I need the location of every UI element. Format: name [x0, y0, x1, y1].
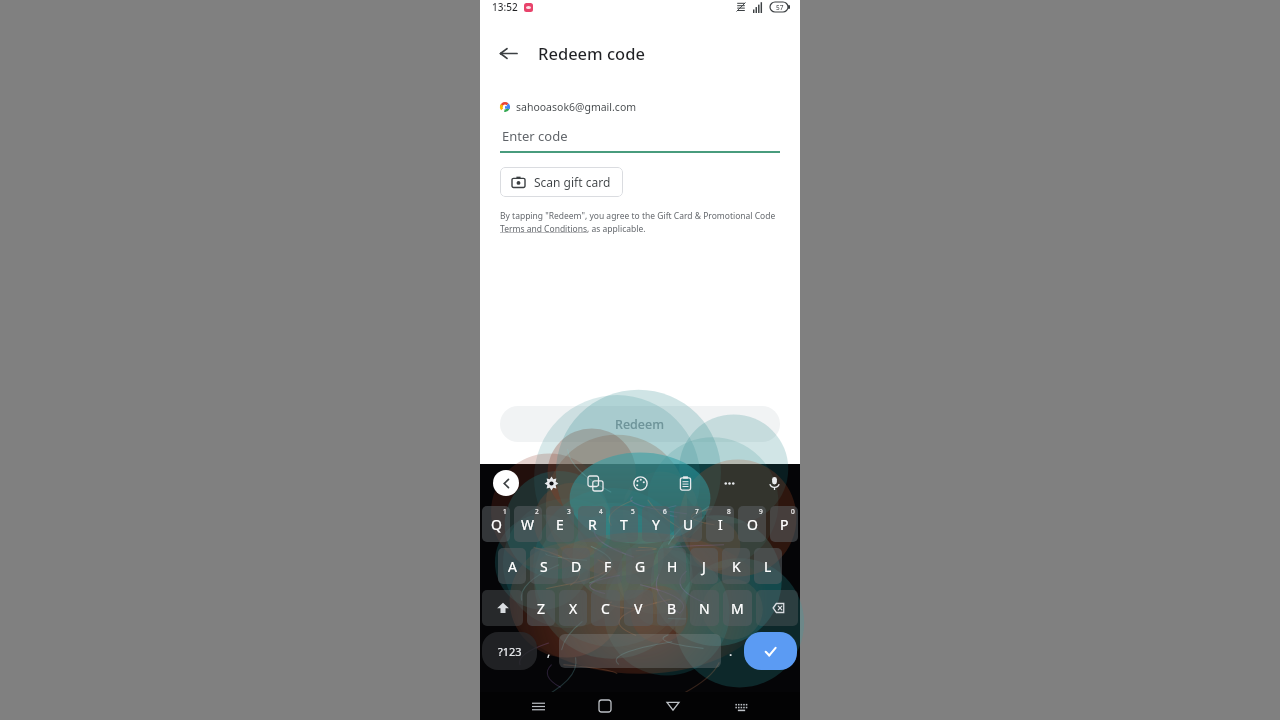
staticText: 57 — [776, 3, 784, 12]
staticText: X — [569, 599, 578, 618]
staticText: 4 — [599, 507, 603, 516]
button[interactable]: Comma — [539, 632, 559, 670]
staticText: M — [731, 599, 744, 618]
button[interactable]: Back — [493, 470, 519, 496]
button[interactable]: G — [626, 548, 654, 584]
button[interactable]: Enter — [744, 632, 797, 670]
staticText: N — [699, 599, 710, 618]
staticText: 8 — [727, 507, 731, 516]
staticText: I — [718, 515, 723, 534]
button[interactable]: H — [658, 548, 686, 584]
button[interactable]: Back — [660, 693, 686, 719]
button[interactable]: Translate — [582, 470, 608, 496]
staticText: W — [521, 515, 535, 534]
staticText: C — [601, 599, 610, 618]
staticText: 13:52 — [492, 0, 518, 14]
button[interactable]: ?123 — [482, 632, 537, 670]
staticText: 1 — [503, 507, 507, 516]
staticText: S — [540, 557, 548, 576]
staticText: , — [547, 643, 551, 659]
button[interactable]: Voice input — [761, 470, 787, 496]
button[interactable]: I — [706, 506, 734, 542]
staticText: Q — [491, 515, 502, 534]
button[interactable]: K — [722, 548, 750, 584]
button[interactable]: E — [546, 506, 574, 542]
button[interactable]: Y — [642, 506, 670, 542]
staticText: . — [729, 643, 733, 659]
staticText: G — [635, 557, 646, 576]
staticText: L — [764, 557, 772, 576]
button[interactable]: Q — [482, 506, 510, 542]
staticText: Scan gift card — [534, 174, 611, 190]
staticText: T — [620, 515, 628, 534]
staticText: K — [732, 557, 741, 576]
button[interactable]: B — [657, 590, 686, 626]
staticText: O — [747, 515, 758, 534]
button[interactable]: Z — [527, 590, 555, 626]
button[interactable]: More — [716, 470, 742, 496]
button[interactable]: Redeem — [500, 406, 780, 442]
button[interactable]: L — [754, 548, 782, 584]
button[interactable]: Switch keyboard — [728, 693, 754, 719]
staticText: H — [667, 557, 678, 576]
button[interactable]: Shift — [482, 590, 523, 626]
button[interactable]: Back — [488, 33, 528, 73]
button[interactable]: N — [690, 590, 719, 626]
button[interactable]: Period — [721, 632, 741, 670]
staticText: V — [634, 599, 643, 618]
staticText: R — [588, 515, 597, 534]
staticText: ?123 — [498, 644, 522, 659]
staticText: P — [780, 515, 789, 534]
staticText: E — [556, 515, 564, 534]
staticText: F — [604, 557, 612, 576]
button[interactable]: C — [591, 590, 620, 626]
staticText: By tapping "Redeem", you agree to the Gi… — [500, 210, 780, 234]
button[interactable]: Space — [559, 634, 721, 668]
staticText: 6 — [663, 507, 667, 516]
button[interactable]: Recent apps — [525, 693, 551, 719]
staticText: U — [683, 515, 694, 534]
staticText: 7 — [695, 507, 699, 516]
staticText: Enter code — [502, 127, 568, 145]
button[interactable]: M — [723, 590, 752, 626]
staticText: A — [508, 557, 517, 576]
button[interactable]: R — [578, 506, 606, 542]
button[interactable]: O — [738, 506, 766, 542]
button[interactable]: T — [610, 506, 638, 542]
staticText: B — [667, 599, 677, 618]
staticText: 2 — [535, 507, 539, 516]
button[interactable]: Backspace — [756, 590, 798, 626]
button[interactable]: Settings — [538, 470, 564, 496]
button[interactable]: U — [674, 506, 702, 542]
button[interactable]: V — [624, 590, 653, 626]
staticText: D — [571, 557, 582, 576]
staticText: sahooasok6@gmail.com — [516, 100, 637, 114]
button[interactable]: F — [594, 548, 622, 584]
staticText: 5 — [631, 507, 635, 516]
staticText: Redeem code — [538, 42, 645, 64]
staticText: 0 — [791, 507, 795, 516]
staticText: 9 — [759, 507, 763, 516]
button[interactable]: P — [770, 506, 798, 542]
button[interactable]: S — [530, 548, 558, 584]
button[interactable]: Clipboard — [672, 470, 698, 496]
button[interactable]: Home — [592, 693, 618, 719]
staticText: J — [702, 557, 706, 576]
button[interactable]: Enter code — [500, 127, 780, 153]
staticText: Y — [652, 515, 660, 534]
button[interactable]: Scan gift card — [500, 167, 623, 197]
staticText: Redeem — [615, 416, 665, 433]
button[interactable]: Themes — [627, 470, 653, 496]
button[interactable]: W — [514, 506, 542, 542]
staticText: 3 — [567, 507, 571, 516]
button[interactable]: A — [498, 548, 526, 584]
button[interactable]: D — [562, 548, 590, 584]
staticText: Z — [537, 599, 546, 618]
button[interactable]: X — [559, 590, 587, 626]
button[interactable]: J — [690, 548, 718, 584]
